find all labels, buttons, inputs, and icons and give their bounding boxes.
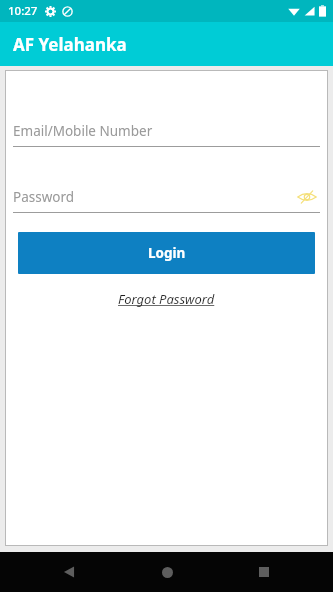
button[interactable]: Recent apps — [247, 555, 281, 589]
button[interactable]: Back — [52, 555, 86, 589]
button[interactable]: Show password — [294, 186, 320, 208]
staticText: 10:27 — [8, 3, 38, 19]
button[interactable]: Home — [150, 555, 184, 589]
staticText: Login — [148, 244, 186, 262]
staticText: AF Yelahanka — [13, 33, 127, 56]
staticText: Forgot Password — [118, 290, 215, 308]
button[interactable]: Login — [18, 232, 315, 274]
button[interactable]: Email/Mobile Number — [13, 119, 320, 147]
staticText: Email/Mobile Number — [13, 122, 153, 140]
button[interactable]: Forgot Password — [112, 288, 221, 310]
button[interactable]: Password — [13, 188, 75, 206]
